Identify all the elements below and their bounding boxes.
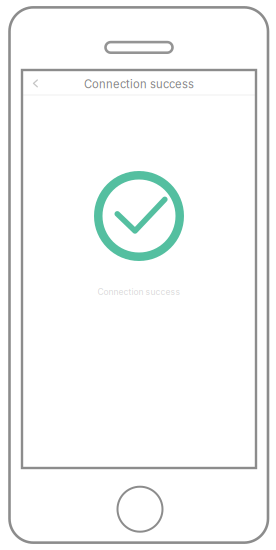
- staticText: Connection success: [84, 77, 194, 91]
- staticText: Connection success: [97, 287, 180, 297]
- button[interactable]: Back: [24, 72, 46, 95]
